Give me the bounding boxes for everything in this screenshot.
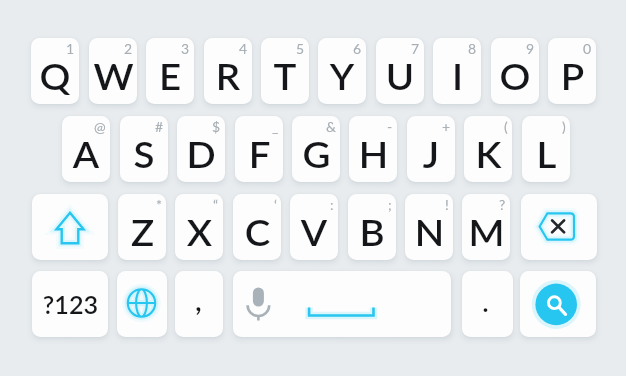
- button[interactable]: E: [146, 38, 194, 104]
- staticText: &: [326, 118, 336, 135]
- staticText: 0: [583, 40, 592, 57]
- staticText: X: [186, 210, 213, 254]
- button[interactable]: T: [261, 38, 309, 104]
- staticText: 9: [526, 40, 535, 57]
- button[interactable]: K: [464, 116, 512, 182]
- staticText: K: [475, 132, 502, 176]
- staticText: J: [423, 132, 439, 176]
- button[interactable]: Q: [31, 38, 79, 104]
- staticText: W: [93, 54, 134, 98]
- button[interactable]: C: [233, 194, 281, 260]
- staticText: *: [156, 196, 162, 213]
- staticText: O: [499, 54, 531, 98]
- staticText: .: [482, 286, 489, 317]
- button[interactable]: Search: [520, 271, 596, 337]
- staticText: I: [452, 54, 463, 98]
- staticText: ;: [388, 196, 392, 213]
- staticText: ,: [195, 283, 202, 317]
- button[interactable]: Space: [233, 271, 451, 337]
- staticText: $: [212, 118, 221, 135]
- staticText: Y: [329, 54, 355, 98]
- button[interactable]: A: [62, 116, 110, 182]
- staticText: M: [468, 210, 505, 254]
- staticText: C: [244, 210, 271, 254]
- staticText: _: [272, 118, 279, 135]
- staticText: @: [94, 118, 106, 135]
- staticText: -: [387, 118, 393, 135]
- staticText: :: [330, 196, 334, 213]
- staticText: 2: [124, 40, 133, 57]
- staticText: (: [504, 118, 508, 135]
- staticText: !: [445, 196, 449, 213]
- staticText: 4: [239, 40, 248, 57]
- staticText: +: [442, 118, 451, 135]
- staticText: Z: [130, 210, 154, 254]
- staticText: #: [155, 118, 164, 135]
- staticText: D: [186, 132, 216, 176]
- staticText: ): [562, 118, 566, 135]
- button[interactable]: H: [349, 116, 397, 182]
- staticText: “: [213, 196, 219, 213]
- button[interactable]: M: [462, 194, 510, 260]
- staticText: ‘: [274, 196, 277, 213]
- button[interactable]: Language: [117, 271, 167, 337]
- button[interactable]: ?123: [32, 271, 108, 337]
- staticText: T: [273, 54, 297, 98]
- button[interactable]: O: [491, 38, 539, 104]
- button[interactable]: B: [348, 194, 396, 260]
- button[interactable]: W: [89, 38, 137, 104]
- button[interactable]: N: [405, 194, 453, 260]
- staticText: F: [248, 132, 270, 176]
- staticText: 7: [411, 40, 420, 57]
- staticText: U: [385, 54, 415, 98]
- staticText: ?123: [43, 290, 98, 319]
- button[interactable]: F: [235, 116, 283, 182]
- button[interactable]: P: [548, 38, 596, 104]
- button[interactable]: J: [407, 116, 455, 182]
- button[interactable]: D: [177, 116, 225, 182]
- staticText: B: [359, 210, 385, 254]
- button[interactable]: .: [462, 271, 513, 337]
- staticText: V: [300, 210, 328, 254]
- button[interactable]: R: [204, 38, 252, 104]
- button[interactable]: Y: [318, 38, 366, 104]
- staticText: 8: [468, 40, 477, 57]
- staticText: R: [215, 54, 241, 98]
- staticText: 1: [66, 40, 75, 57]
- button[interactable]: Shift: [32, 194, 108, 260]
- button[interactable]: ,: [175, 271, 223, 337]
- staticText: 3: [181, 40, 190, 57]
- button[interactable]: Backspace: [521, 194, 597, 260]
- staticText: G: [302, 132, 331, 176]
- button[interactable]: L: [522, 116, 570, 182]
- button[interactable]: U: [376, 38, 424, 104]
- button[interactable]: X: [175, 194, 223, 260]
- staticText: P: [560, 54, 585, 98]
- staticText: H: [358, 132, 389, 176]
- staticText: A: [72, 132, 100, 176]
- staticText: L: [536, 132, 556, 176]
- staticText: ?: [499, 196, 506, 213]
- button[interactable]: Z: [118, 194, 166, 260]
- staticText: 5: [296, 40, 305, 57]
- button[interactable]: G: [292, 116, 340, 182]
- staticText: Q: [39, 54, 71, 98]
- button[interactable]: I: [433, 38, 481, 104]
- staticText: E: [158, 54, 181, 98]
- button[interactable]: V: [290, 194, 338, 260]
- staticText: S: [133, 132, 154, 176]
- button[interactable]: S: [120, 116, 168, 182]
- staticText: N: [414, 210, 445, 254]
- staticText: 6: [353, 40, 362, 57]
